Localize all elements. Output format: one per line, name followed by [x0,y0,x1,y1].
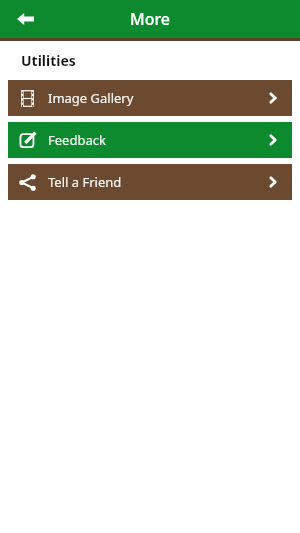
button[interactable]: Back [8,2,42,36]
button[interactable]: Tell a Friend [8,164,292,200]
staticText: More [0,8,300,30]
staticText: Utilities [21,51,76,70]
button[interactable]: Image Gallery [8,80,292,116]
staticText: Tell a Friend [48,173,122,191]
button[interactable]: Feedback [8,122,292,158]
staticText: Image Gallery [48,89,134,107]
staticText: Feedback [48,131,106,149]
